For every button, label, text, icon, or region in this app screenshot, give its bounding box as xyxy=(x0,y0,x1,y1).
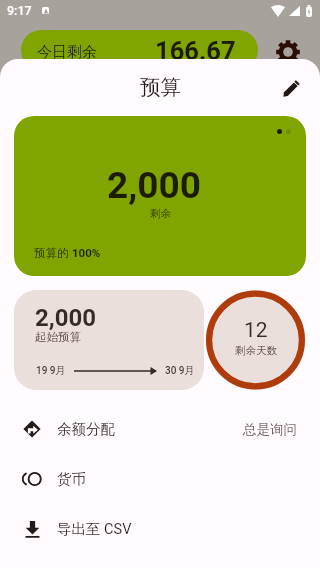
staticText: 预算的 xyxy=(34,246,72,260)
staticText: 预算 xyxy=(140,74,181,100)
button[interactable]: Edit xyxy=(271,68,311,108)
staticText: 今日剩余 xyxy=(37,43,97,62)
staticText: 导出至 CSV xyxy=(57,520,132,538)
staticText: 剩余 xyxy=(150,207,171,220)
button[interactable]: 12 xyxy=(204,290,307,390)
button[interactable]: 2,000 xyxy=(14,116,306,276)
staticText: 总是询问 xyxy=(243,421,297,438)
staticText: 30 9月 xyxy=(165,364,195,377)
staticText: 剩余天数 xyxy=(235,344,277,357)
staticText: 9:17 xyxy=(7,3,32,18)
staticText: 100% xyxy=(72,246,101,259)
staticText: 2,000 xyxy=(107,164,201,207)
button[interactable]: 余额分配 xyxy=(0,404,320,454)
button[interactable]: 2,000 xyxy=(14,290,204,390)
button[interactable]: 今日剩余 xyxy=(21,30,258,70)
staticText: 2,000 xyxy=(35,304,96,332)
button[interactable]: Settings xyxy=(271,34,307,70)
staticText: 起始预算 xyxy=(35,330,81,344)
staticText: 19 9月 xyxy=(36,364,66,377)
staticText: 12 xyxy=(244,318,268,343)
button[interactable]: 导出至 CSV xyxy=(0,504,320,554)
staticText: 货币 xyxy=(57,470,86,488)
staticText: 166.67 xyxy=(155,36,236,66)
button[interactable]: 货币 xyxy=(0,454,320,504)
staticText: 余额分配 xyxy=(57,420,115,438)
